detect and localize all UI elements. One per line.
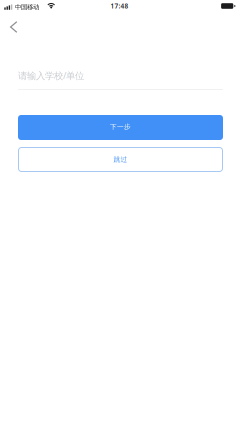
staticText: 中国移动 bbox=[15, 3, 39, 11]
button[interactable]: 下一步 bbox=[18, 115, 223, 140]
button[interactable]: 请输入学校/单位 bbox=[18, 70, 223, 90]
button[interactable]: 跳过 bbox=[18, 147, 223, 172]
staticText: 跳过 bbox=[113, 155, 127, 164]
staticText: 17:48 bbox=[110, 2, 128, 10]
staticText: 请输入学校/单位 bbox=[18, 69, 84, 82]
button[interactable]: Back bbox=[0, 14, 28, 40]
staticText: 下一步 bbox=[110, 123, 131, 131]
